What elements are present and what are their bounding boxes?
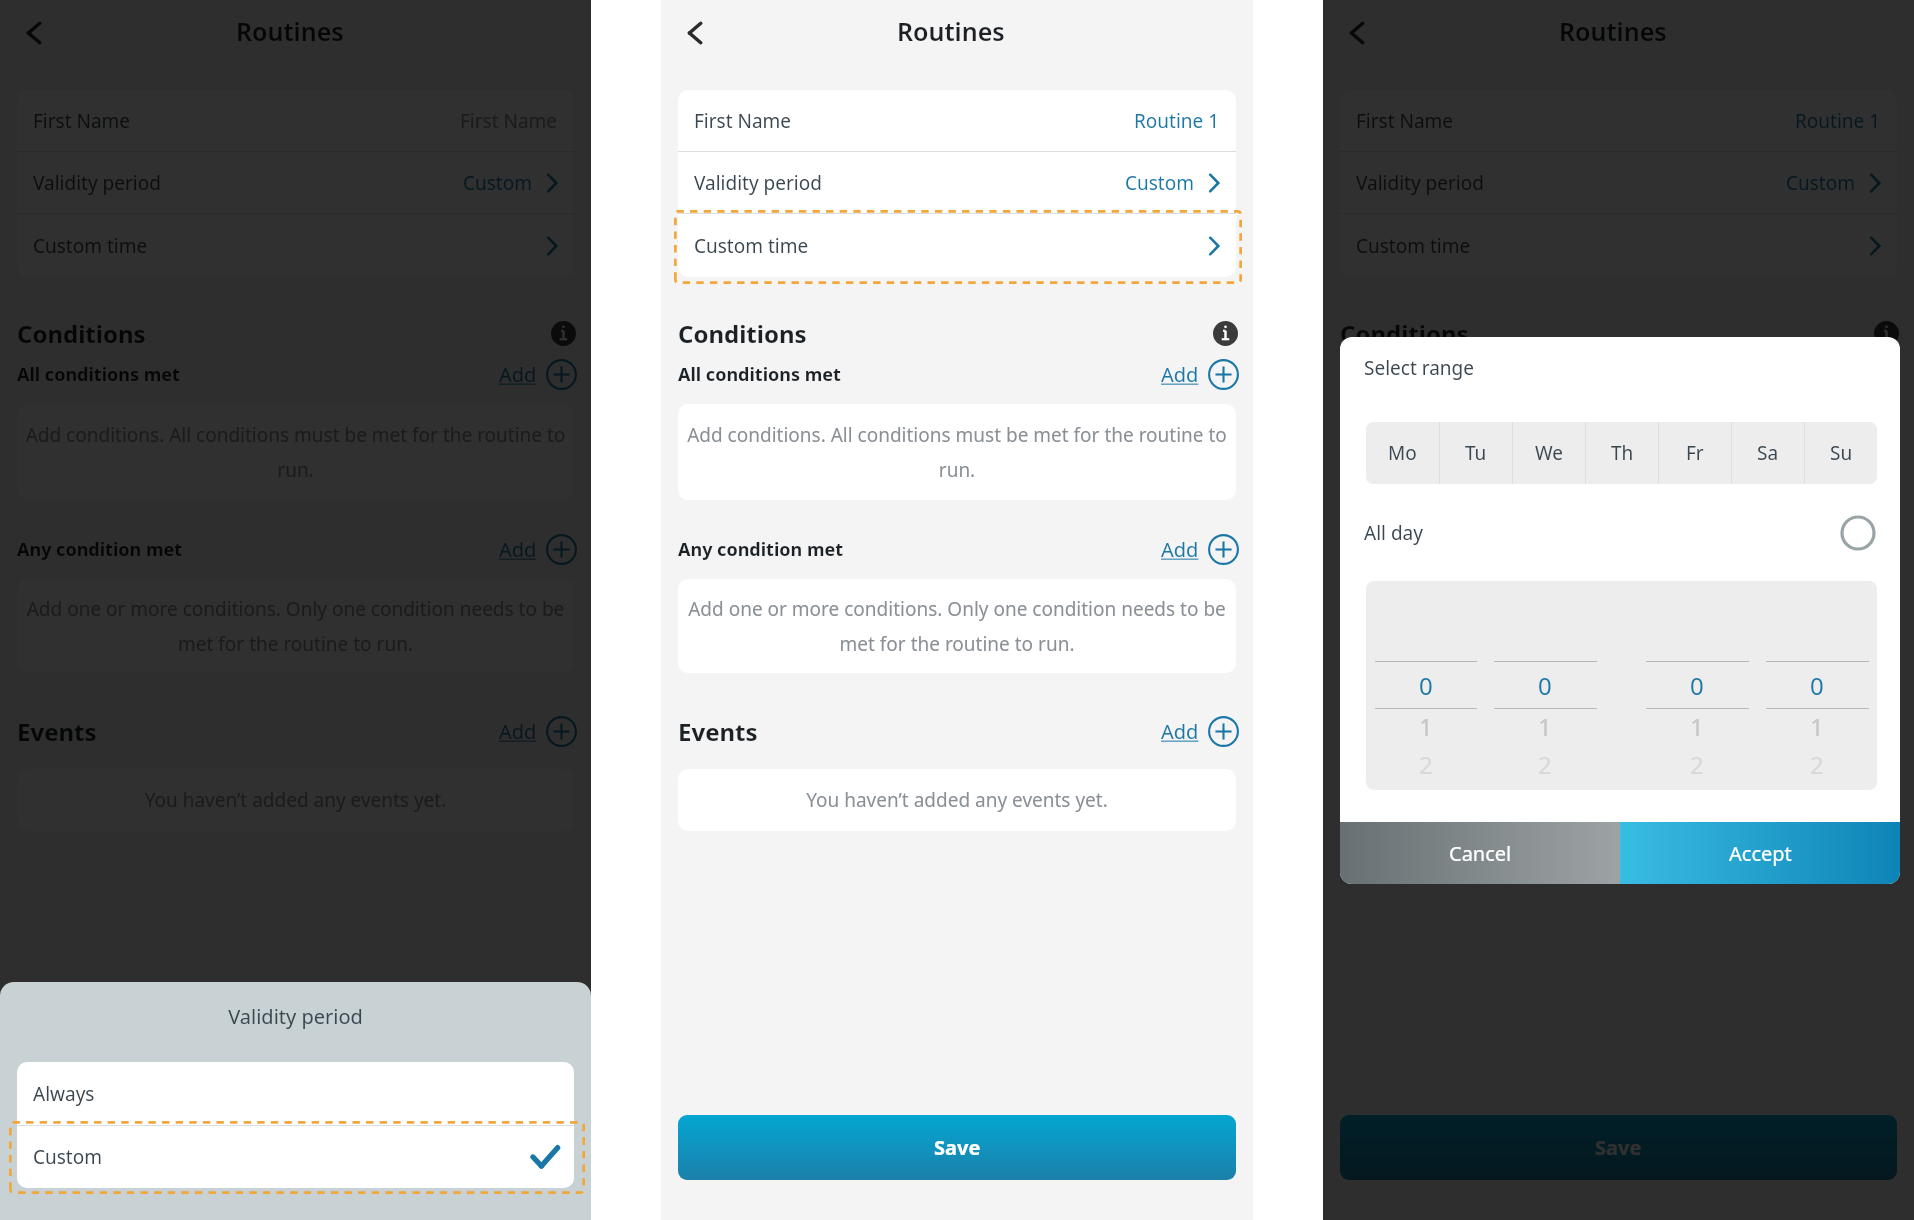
- staticText: 2: [1810, 748, 1824, 781]
- staticText: 0: [1419, 669, 1433, 702]
- button[interactable]: Add: [1161, 716, 1239, 747]
- staticText: Any condition met: [17, 537, 183, 562]
- button[interactable]: Cancel: [1340, 822, 1620, 884]
- staticText: Add conditions. All conditions must be m…: [23, 422, 568, 483]
- staticText: Events: [678, 715, 758, 748]
- button[interactable]: Add: [1822, 534, 1900, 565]
- staticText: Cancel: [1449, 840, 1512, 867]
- staticText: First Name: [1356, 108, 1454, 134]
- button[interactable]: Info: [1213, 321, 1238, 346]
- button[interactable]: First Name: [678, 90, 1236, 151]
- button[interactable]: Add: [1822, 716, 1900, 747]
- button[interactable]: Add: [1161, 534, 1239, 565]
- staticText: Validity period: [694, 170, 822, 196]
- button[interactable]: Mo: [1366, 422, 1439, 484]
- staticText: Routines: [897, 14, 1005, 48]
- staticText: Events: [17, 715, 97, 748]
- button[interactable]: First Name: [17, 90, 574, 151]
- staticText: Add: [499, 718, 537, 745]
- staticText: 1: [1690, 710, 1704, 743]
- button[interactable]: Custom time: [1340, 214, 1897, 277]
- staticText: Save: [1595, 1134, 1642, 1161]
- staticText: Custom: [33, 1144, 102, 1170]
- button[interactable]: Custom: [17, 1126, 574, 1188]
- staticText: All day: [1364, 520, 1423, 546]
- staticText: Add: [499, 361, 537, 388]
- button[interactable]: Sa: [1732, 422, 1804, 484]
- button[interactable]: Validity period: [17, 152, 574, 213]
- staticText: Tu: [1465, 440, 1487, 466]
- staticText: You haven’t added any events yet.: [1346, 787, 1891, 813]
- staticText: You haven’t added any events yet.: [23, 787, 568, 813]
- button[interactable]: Add: [499, 534, 577, 565]
- staticText: 2: [1538, 748, 1552, 781]
- staticText: Save: [934, 1134, 981, 1161]
- staticText: Add one or more conditions. Only one con…: [1346, 596, 1891, 657]
- staticText: Custom time: [33, 233, 148, 259]
- button[interactable]: Tu: [1440, 422, 1512, 484]
- staticText: 0: [1538, 669, 1552, 702]
- staticText: All conditions met: [678, 362, 841, 387]
- staticText: 1: [1538, 710, 1552, 743]
- staticText: Validity period: [0, 1003, 591, 1030]
- button[interactable]: Accept: [1620, 822, 1900, 884]
- staticText: Routine 1: [1795, 108, 1881, 134]
- staticText: Always: [33, 1081, 95, 1107]
- button[interactable]: Custom time: [678, 214, 1236, 277]
- staticText: Accept: [1729, 840, 1792, 867]
- staticText: Add conditions. All conditions must be m…: [1346, 422, 1891, 483]
- staticText: Custom: [1786, 170, 1855, 196]
- button[interactable]: Info: [551, 321, 576, 346]
- button[interactable]: Info: [1874, 321, 1899, 346]
- button[interactable]: Always: [17, 1062, 574, 1125]
- staticText: Events: [1340, 715, 1420, 748]
- staticText: We: [1535, 440, 1564, 466]
- staticText: Conditions: [1340, 317, 1469, 350]
- staticText: All conditions met: [1340, 362, 1503, 387]
- staticText: 2: [1690, 748, 1704, 781]
- staticText: Validity period: [33, 170, 161, 196]
- staticText: First Name: [460, 108, 558, 134]
- staticText: Su: [1830, 440, 1853, 466]
- staticText: Routines: [1559, 14, 1667, 48]
- staticText: Custom: [463, 170, 532, 196]
- button[interactable]: Su: [1805, 422, 1877, 484]
- staticText: Custom: [1125, 170, 1194, 196]
- staticText: Validity period: [1356, 170, 1484, 196]
- staticText: Custom time: [694, 233, 809, 259]
- staticText: 1: [1419, 710, 1433, 743]
- button[interactable]: We: [1513, 422, 1585, 484]
- staticText: 2: [1419, 748, 1433, 781]
- button[interactable]: Save: [678, 1115, 1236, 1180]
- button[interactable]: Validity period: [678, 152, 1236, 213]
- staticText: You haven’t added any events yet.: [684, 787, 1230, 813]
- button[interactable]: Add: [1161, 359, 1239, 390]
- button[interactable]: Save: [17, 1115, 574, 1180]
- button[interactable]: Back: [12, 11, 56, 55]
- staticText: Select range: [1364, 355, 1474, 381]
- button[interactable]: Fr: [1659, 422, 1731, 484]
- button[interactable]: Back: [1335, 11, 1379, 55]
- staticText: Th: [1611, 440, 1634, 466]
- staticText: Conditions: [17, 317, 146, 350]
- staticText: 0: [1690, 669, 1704, 702]
- button[interactable]: Validity period: [1340, 152, 1897, 213]
- staticText: Add: [1161, 361, 1199, 388]
- button[interactable]: First Name: [1340, 90, 1897, 151]
- button[interactable]: Save: [1340, 1115, 1897, 1180]
- button[interactable]: Custom time: [17, 214, 574, 277]
- button[interactable]: Add: [499, 716, 577, 747]
- staticText: Add: [1822, 536, 1860, 563]
- button[interactable]: Th: [1586, 422, 1658, 484]
- staticText: Sa: [1757, 440, 1779, 466]
- button[interactable]: Back: [673, 11, 717, 55]
- staticText: Add one or more conditions. Only one con…: [684, 596, 1230, 657]
- button[interactable]: Add: [499, 359, 577, 390]
- staticText: Mo: [1388, 440, 1417, 466]
